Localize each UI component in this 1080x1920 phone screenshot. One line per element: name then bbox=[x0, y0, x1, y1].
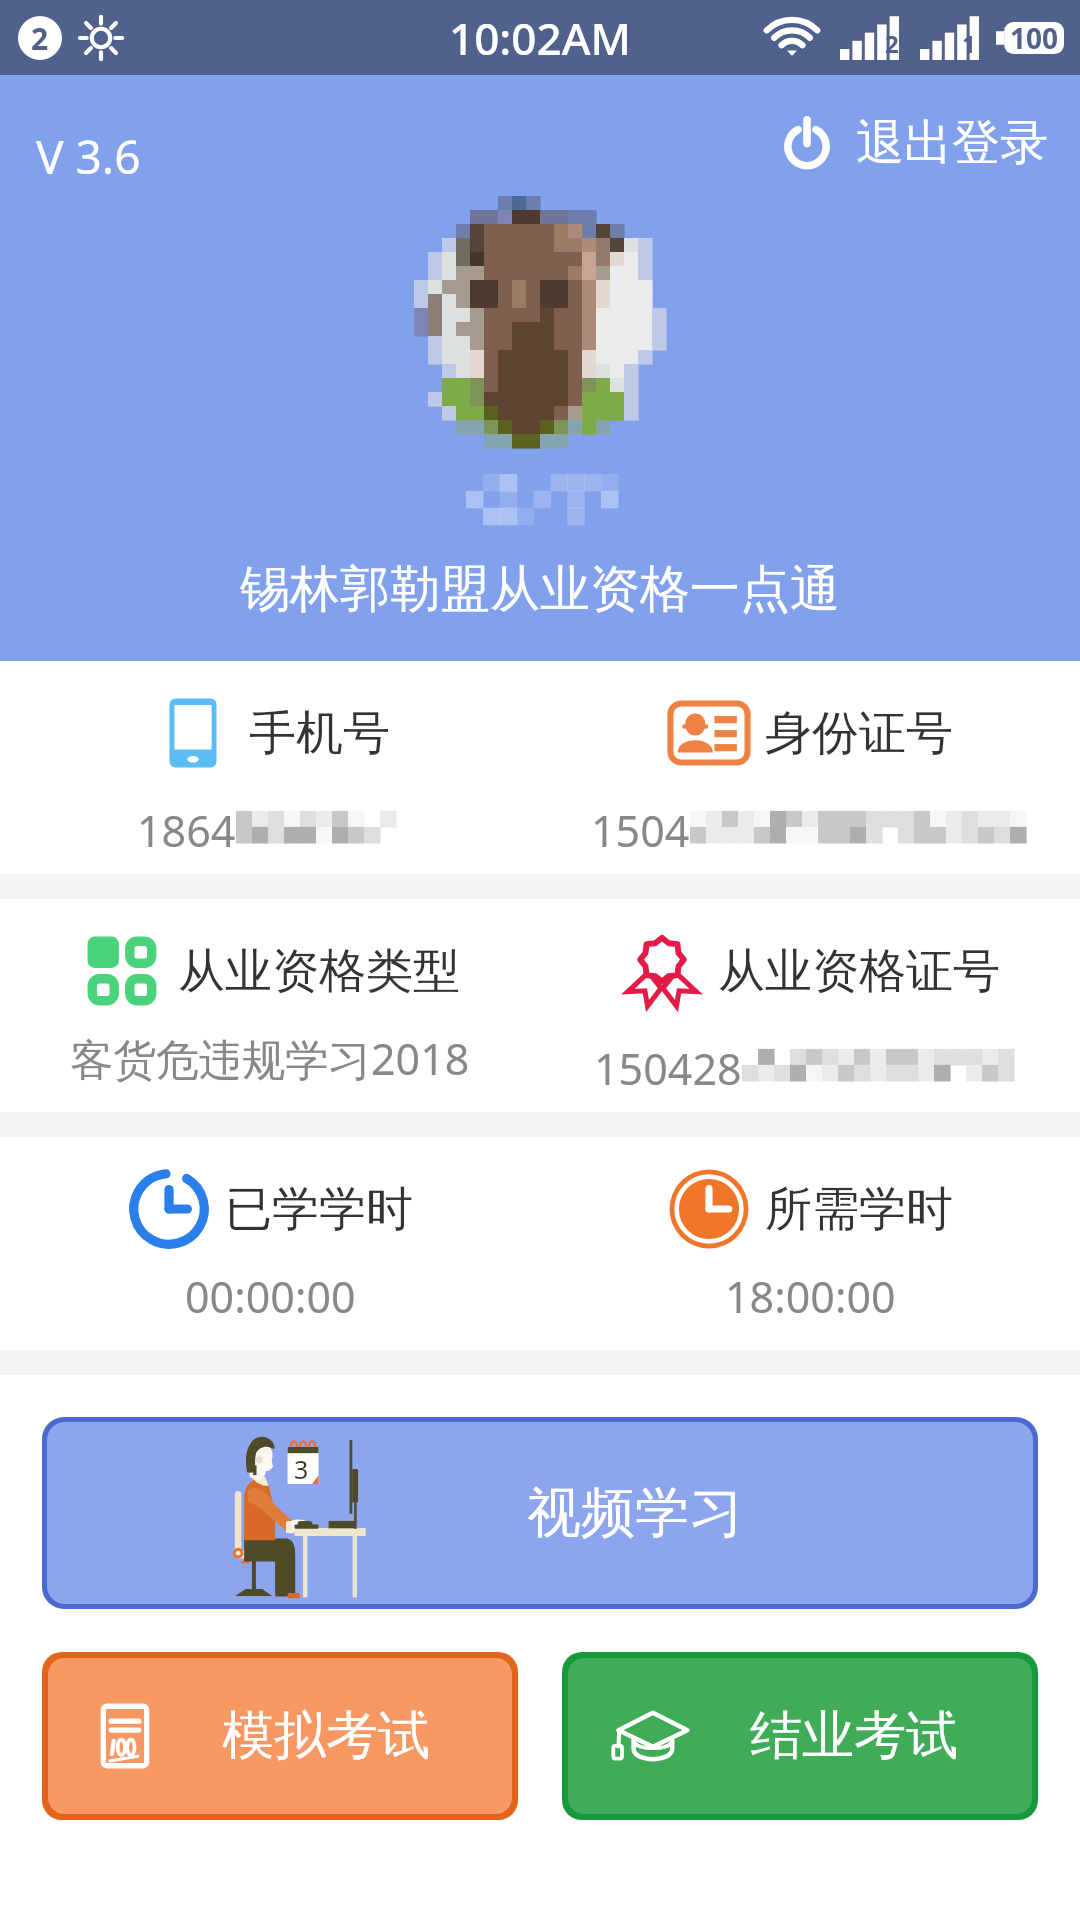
button[interactable]: 退出登录 Log out bbox=[778, 113, 1048, 173]
button[interactable]: 3 bbox=[47, 1422, 1033, 1604]
staticText: 3 bbox=[294, 1452, 309, 1482]
button[interactable]: 身份证号 bbox=[540, 661, 1080, 874]
staticText: V 3.6 bbox=[36, 125, 141, 188]
staticText: 1504 bbox=[591, 801, 690, 860]
staticText: 视频学习 bbox=[527, 1479, 743, 1547]
button[interactable]: 模拟考试 bbox=[48, 1658, 512, 1814]
button[interactable]: 手机号 bbox=[0, 661, 540, 874]
button[interactable]: 已学学时 bbox=[0, 1137, 540, 1350]
staticText: 2 bbox=[885, 27, 899, 60]
staticText: 所需学时 bbox=[765, 1180, 953, 1239]
staticText: 00:00:00 bbox=[185, 1267, 356, 1326]
staticText: 结业考试 bbox=[750, 1703, 958, 1769]
staticText: 10:02AM bbox=[449, 8, 631, 68]
staticText: 已学学时 bbox=[225, 1180, 413, 1239]
staticText: 1 bbox=[962, 27, 976, 60]
staticText: 18:00:00 bbox=[725, 1267, 896, 1326]
staticText: 从业资格类型 bbox=[178, 942, 460, 1001]
staticText: 100 bbox=[1010, 19, 1059, 57]
staticText: 从业资格证号 bbox=[718, 942, 1000, 1001]
staticText: 客货危违规学习2018 bbox=[70, 1029, 470, 1088]
staticText: 2 bbox=[31, 18, 49, 59]
staticText: 1864 bbox=[137, 801, 236, 860]
button[interactable]: 用户头像 Profile photo bbox=[414, 196, 666, 448]
button[interactable]: 所需学时 bbox=[540, 1137, 1080, 1350]
button[interactable]: 从业资格证号 bbox=[540, 899, 1080, 1112]
staticText: 150428 bbox=[594, 1039, 742, 1098]
staticText: 模拟考试 bbox=[222, 1703, 430, 1769]
staticText: 手机号 bbox=[249, 704, 390, 763]
button[interactable]: 从业资格类型 bbox=[0, 899, 540, 1112]
staticText: 锡林郭勒盟从业资格一点通 bbox=[240, 558, 840, 621]
staticText: 身份证号 bbox=[765, 704, 953, 763]
staticText: 退出登录 bbox=[856, 113, 1048, 173]
button[interactable]: 结业考试 bbox=[568, 1658, 1032, 1814]
